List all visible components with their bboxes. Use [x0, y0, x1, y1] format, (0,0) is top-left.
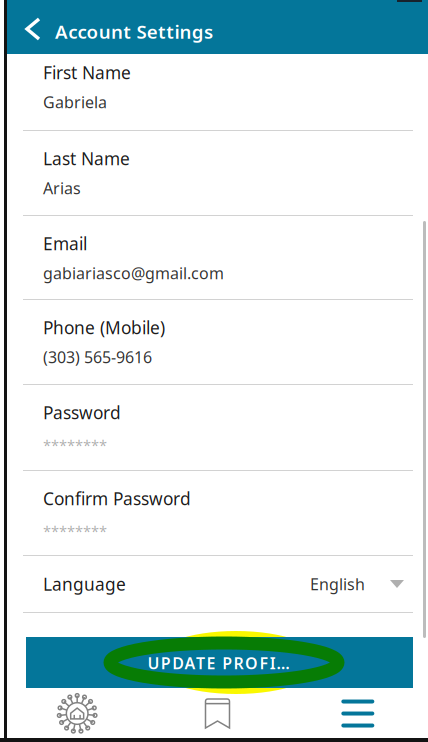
- staticText: Password: [43, 401, 121, 424]
- button[interactable]: Password: [7, 385, 428, 471]
- button[interactable]: Back: [7, 0, 55, 54]
- button[interactable]: First Name: [7, 54, 428, 131]
- button[interactable]: Confirm Password: [7, 471, 428, 556]
- button[interactable]: Phone (Mobile): [7, 300, 428, 385]
- staticText: Arias: [43, 177, 81, 199]
- staticText: Gabriela: [43, 91, 107, 113]
- staticText: Confirm Password: [43, 487, 191, 510]
- button[interactable]: Language: [7, 556, 428, 613]
- button[interactable]: Home: [7, 689, 147, 738]
- staticText: English: [310, 573, 365, 595]
- button[interactable]: Last Name: [7, 131, 428, 216]
- staticText: Language: [43, 572, 126, 595]
- staticText: First Name: [43, 61, 131, 84]
- button[interactable]: Update Profile: [26, 637, 413, 688]
- staticText: Email: [43, 232, 87, 255]
- button[interactable]: Email: [7, 216, 428, 300]
- button[interactable]: Menu: [288, 689, 428, 738]
- staticText: ********: [43, 521, 107, 541]
- staticText: Last Name: [43, 147, 130, 170]
- staticText: Phone (Mobile): [43, 316, 165, 339]
- staticText: (303) 565-9616: [43, 346, 152, 368]
- staticText: UPDATE PROFILE: [147, 652, 297, 674]
- staticText: gabiariasco@gmail.com: [43, 262, 224, 284]
- staticText: Account Settings: [55, 19, 213, 44]
- button[interactable]: Saved: [147, 689, 288, 738]
- staticText: ********: [43, 435, 107, 455]
